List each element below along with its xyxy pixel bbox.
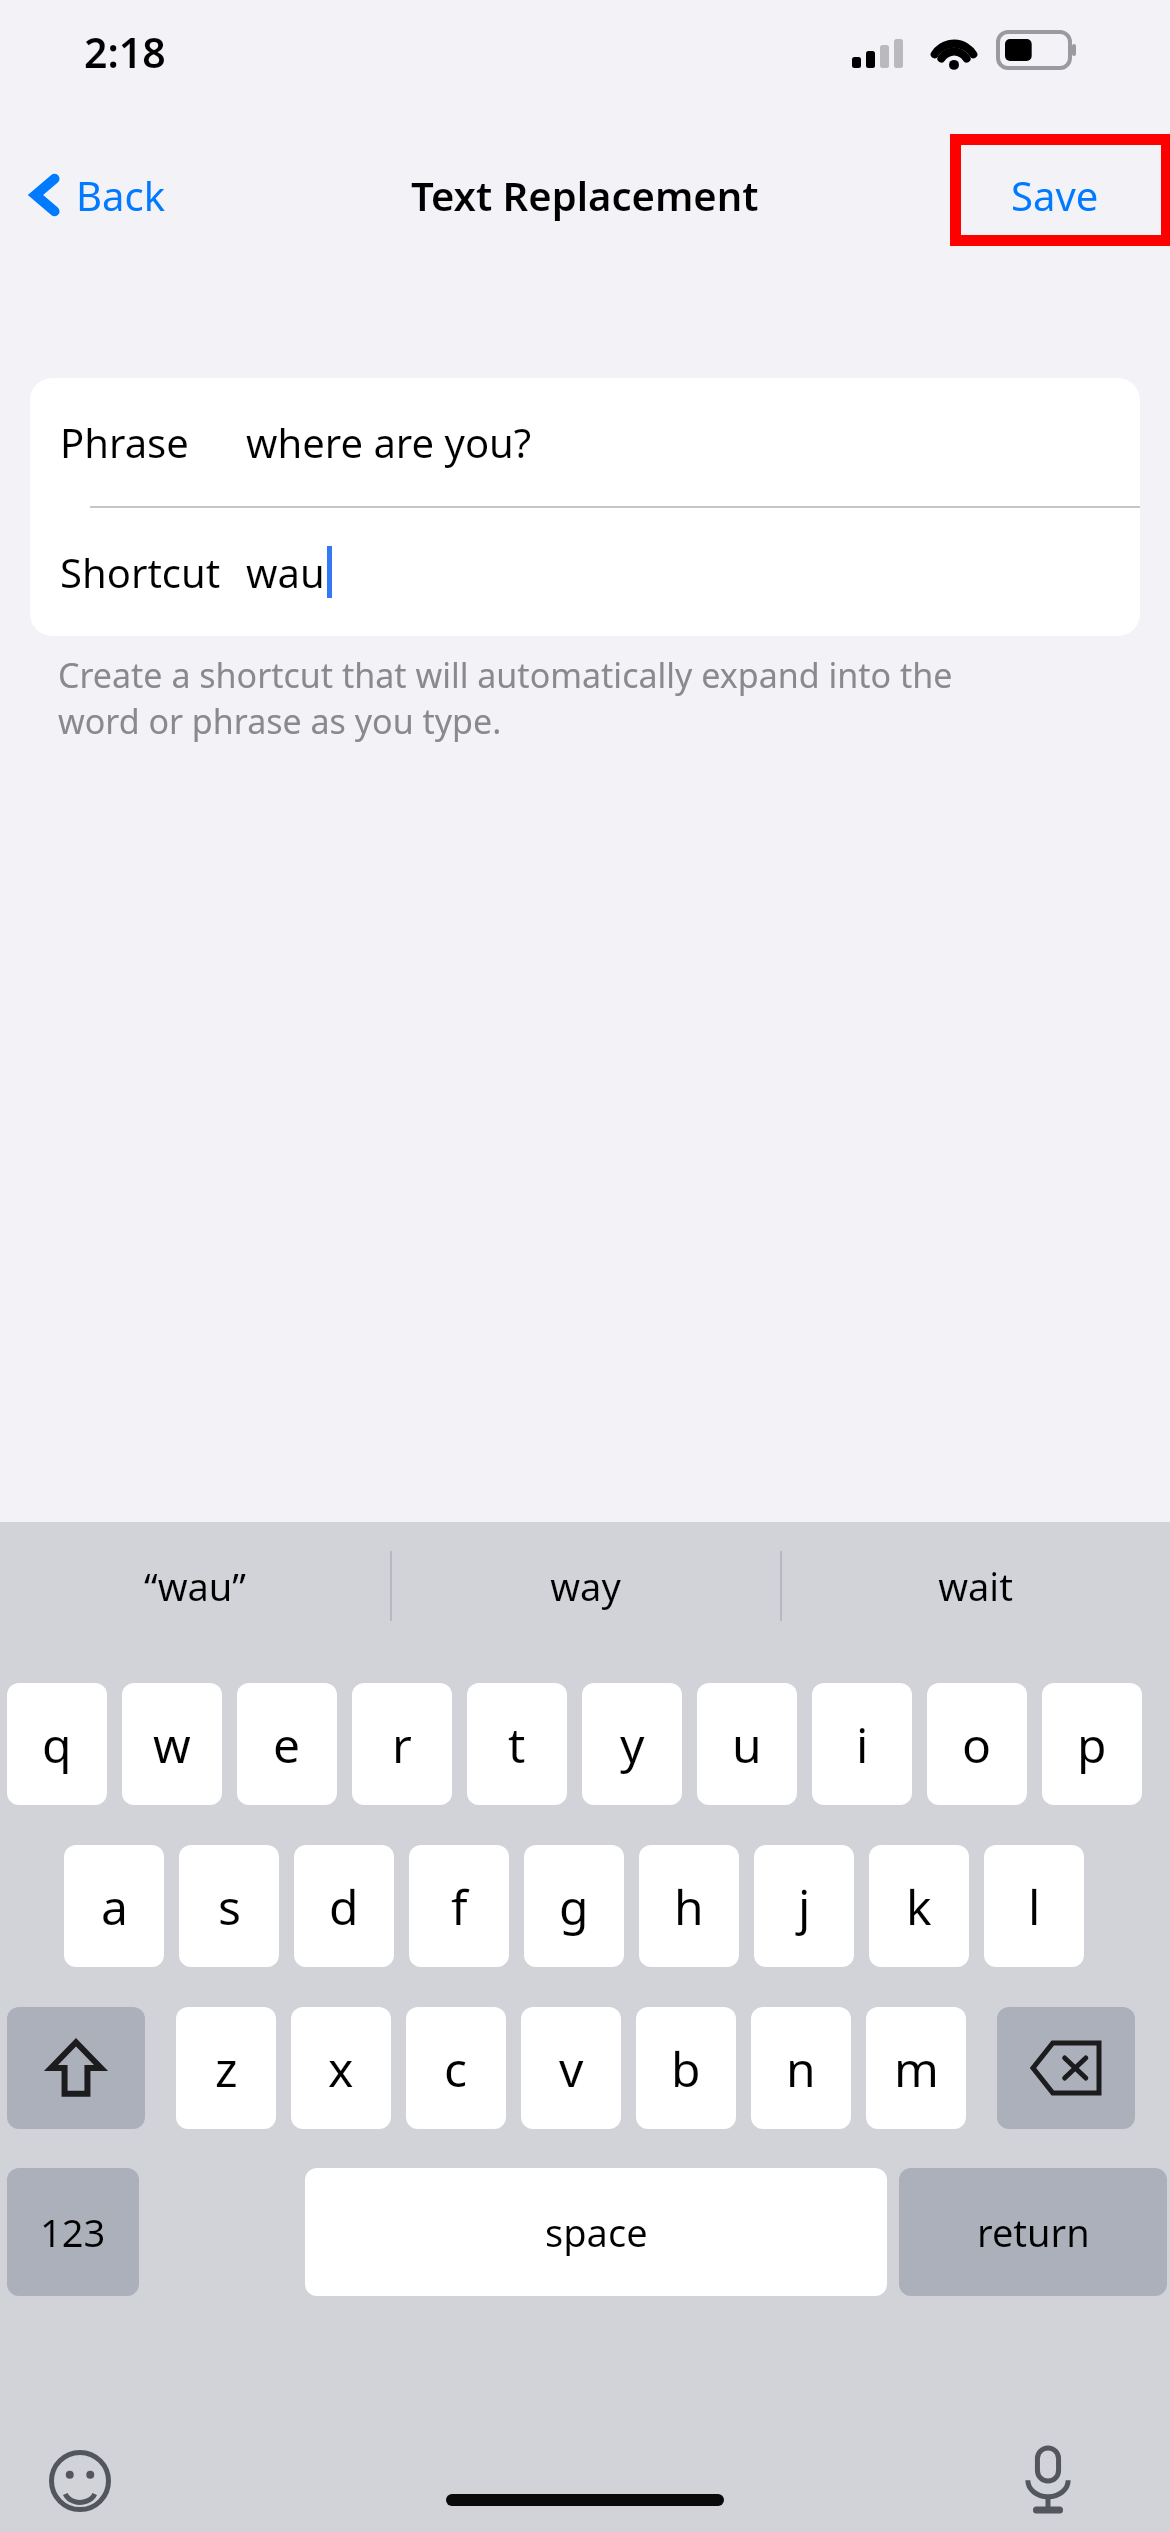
staticText: way <box>550 1560 621 1612</box>
button[interactable]: Back <box>18 150 175 240</box>
button[interactable]: way <box>390 1522 780 1650</box>
button[interactable]: s <box>179 1845 279 1967</box>
staticText: return <box>977 2206 1090 2258</box>
staticText: v <box>559 2036 584 2101</box>
button[interactable]: t <box>467 1683 567 1805</box>
button[interactable]: Dictation <box>1004 2437 1092 2525</box>
staticText: where are you? <box>246 415 532 469</box>
button[interactable]: 123 <box>7 2168 139 2296</box>
button[interactable]: o <box>927 1683 1027 1805</box>
button[interactable]: k <box>869 1845 969 1967</box>
staticText: Create a shortcut that will automaticall… <box>58 652 953 698</box>
staticText: z <box>215 2036 238 2101</box>
staticText: o <box>962 1712 992 1777</box>
staticText: a <box>101 1874 128 1939</box>
button[interactable]: l <box>984 1845 1084 1967</box>
staticText: y <box>620 1712 645 1777</box>
button[interactable]: Delete <box>997 2007 1135 2129</box>
staticText: u <box>732 1712 762 1777</box>
staticText: 2:18 <box>84 24 166 76</box>
staticText: “wau” <box>144 1560 246 1612</box>
staticText: p <box>1077 1712 1107 1777</box>
button[interactable]: w <box>122 1683 222 1805</box>
staticText: Phrase <box>60 415 189 469</box>
button[interactable]: Shift <box>7 2007 145 2129</box>
staticText: word or phrase as you type. <box>58 698 502 744</box>
button[interactable]: m <box>866 2007 966 2129</box>
staticText: k <box>906 1874 932 1939</box>
button[interactable]: b <box>636 2007 736 2129</box>
button[interactable]: c <box>406 2007 506 2129</box>
button[interactable]: n <box>751 2007 851 2129</box>
button[interactable]: a <box>64 1845 164 1967</box>
staticText: wait <box>938 1560 1013 1612</box>
button[interactable]: p <box>1042 1683 1142 1805</box>
staticText: b <box>671 2036 701 2101</box>
button[interactable]: e <box>237 1683 337 1805</box>
staticText: wau <box>246 545 325 599</box>
staticText: Text Replacement <box>411 168 759 222</box>
staticText: Save <box>1011 168 1099 222</box>
staticText: x <box>328 2036 354 2101</box>
button[interactable]: y <box>582 1683 682 1805</box>
button[interactable]: u <box>697 1683 797 1805</box>
staticText: 123 <box>40 2206 106 2258</box>
button[interactable]: x <box>291 2007 391 2129</box>
button[interactable]: return <box>899 2168 1167 2296</box>
button[interactable]: g <box>524 1845 624 1967</box>
staticText: t <box>508 1712 526 1777</box>
button[interactable]: f <box>409 1845 509 1967</box>
staticText: j <box>798 1874 811 1939</box>
staticText: i <box>856 1712 869 1777</box>
button[interactable]: i <box>812 1683 912 1805</box>
button[interactable]: Shortcut <box>30 508 1140 636</box>
staticText: l <box>1028 1874 1041 1939</box>
button[interactable]: r <box>352 1683 452 1805</box>
button[interactable]: wait <box>780 1522 1170 1650</box>
staticText: f <box>451 1874 468 1939</box>
staticText: space <box>545 2206 648 2258</box>
button[interactable]: j <box>754 1845 854 1967</box>
button[interactable]: d <box>294 1845 394 1967</box>
button[interactable]: h <box>639 1845 739 1967</box>
staticText: Shortcut <box>60 545 221 599</box>
staticText: g <box>559 1874 589 1939</box>
staticText: Back <box>76 168 165 222</box>
button[interactable]: z <box>176 2007 276 2129</box>
staticText: q <box>42 1712 72 1777</box>
button[interactable]: v <box>521 2007 621 2129</box>
staticText: n <box>786 2036 816 2101</box>
button[interactable]: q <box>7 1683 107 1805</box>
staticText: d <box>329 1874 359 1939</box>
staticText: r <box>392 1712 412 1777</box>
staticText: m <box>894 2036 939 2101</box>
staticText: h <box>674 1874 704 1939</box>
staticText: e <box>273 1712 301 1777</box>
staticText: s <box>218 1874 241 1939</box>
button[interactable]: space <box>305 2168 887 2296</box>
button[interactable]: Save <box>980 150 1130 240</box>
button[interactable]: Phrase <box>30 378 1140 506</box>
staticText: c <box>444 2036 468 2101</box>
staticText: w <box>153 1712 191 1777</box>
button[interactable]: Emoji <box>36 2437 124 2525</box>
button[interactable]: “wau” <box>0 1522 390 1650</box>
